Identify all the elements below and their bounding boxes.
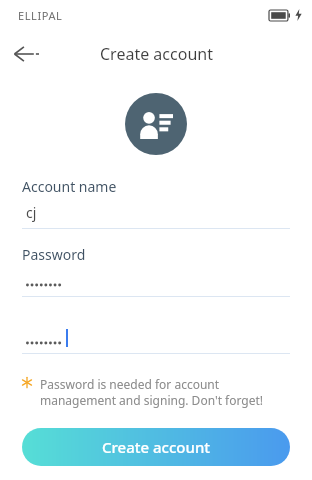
staticText: ELLIPAL: [18, 8, 63, 23]
button[interactable]: Create account: [22, 428, 290, 466]
staticText: Account name: [22, 177, 117, 196]
button[interactable]: [0, 323, 312, 353]
button[interactable]: Back: [4, 32, 48, 76]
staticText: Password is needed for account managemen…: [40, 376, 282, 408]
staticText: Password: [22, 245, 86, 264]
button[interactable]: [0, 264, 312, 296]
staticText: Create account: [102, 437, 211, 457]
staticText: cj: [26, 203, 37, 222]
button[interactable]: cj: [0, 196, 312, 228]
staticText: Create account: [100, 43, 213, 65]
